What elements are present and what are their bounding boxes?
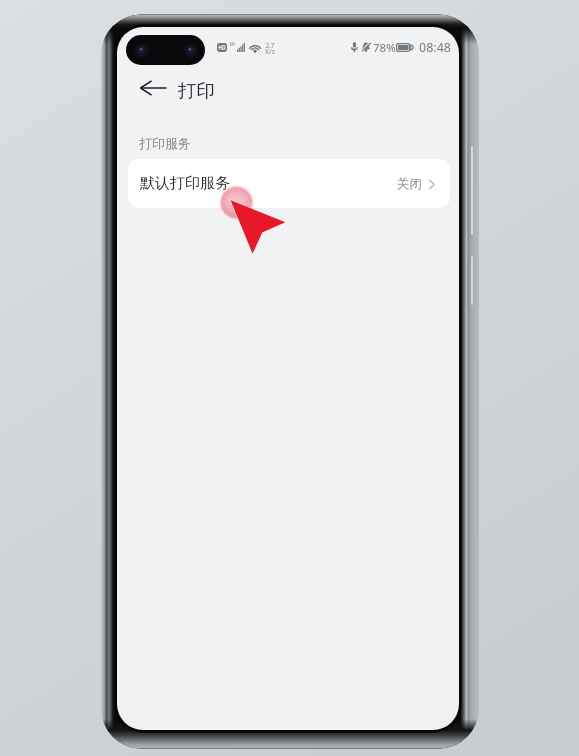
- staticText: 打印服务: [139, 135, 191, 151]
- staticText: 08:48: [419, 39, 451, 56]
- staticText: 2.7 K/s: [265, 41, 275, 56]
- staticText: 打印: [178, 79, 215, 102]
- staticText: 78%: [373, 40, 396, 56]
- button[interactable]: Back: [134, 69, 172, 107]
- staticText: 关闭: [397, 176, 422, 192]
- button[interactable]: 默认打印服务: [128, 159, 450, 208]
- staticText: 默认打印服务: [140, 174, 230, 193]
